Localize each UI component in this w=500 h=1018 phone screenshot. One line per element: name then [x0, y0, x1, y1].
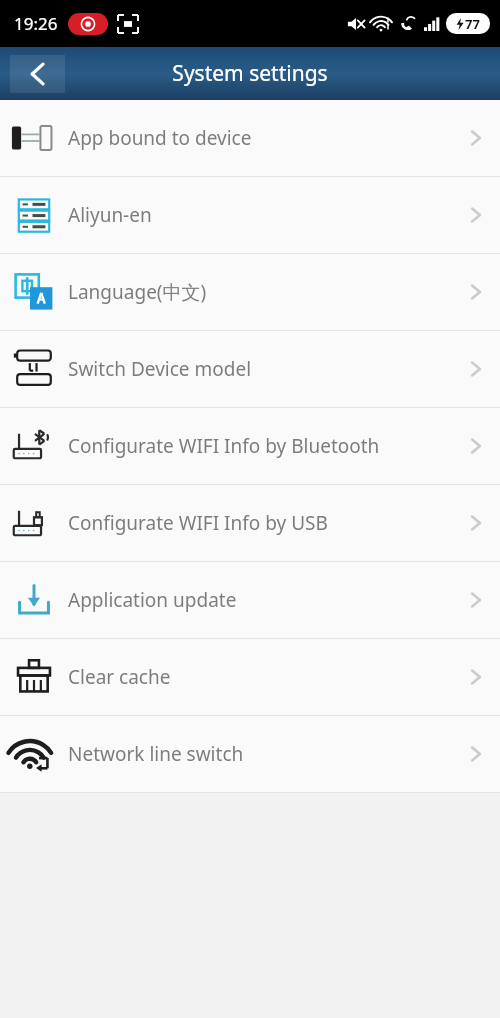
staticText: 77: [465, 15, 480, 33]
button[interactable]: Configurate WIFI Info by USB: [0, 485, 500, 561]
button[interactable]: Back: [10, 55, 65, 93]
button[interactable]: Configurate WIFI Info by Bluetooth: [0, 408, 500, 484]
button[interactable]: Application update: [0, 562, 500, 638]
staticText: Switch Device model: [68, 356, 470, 382]
button[interactable]: Aliyun-en: [0, 177, 500, 253]
staticText: 19:26: [14, 12, 58, 35]
staticText: System settings: [172, 59, 328, 88]
staticText: Aliyun-en: [68, 202, 470, 228]
staticText: Configurate WIFI Info by Bluetooth: [68, 433, 470, 459]
button[interactable]: Clear cache: [0, 639, 500, 715]
staticText: Language(中文): [68, 279, 470, 305]
staticText: App bound to device: [68, 125, 470, 151]
staticText: Configurate WIFI Info by USB: [68, 510, 470, 536]
button[interactable]: Switch Device model: [0, 331, 500, 407]
staticText: Clear cache: [68, 664, 470, 690]
staticText: Application update: [68, 587, 470, 613]
staticText: Network line switch: [68, 741, 470, 767]
button[interactable]: Network line switch: [0, 716, 500, 792]
button[interactable]: Language(中文): [0, 254, 500, 330]
button[interactable]: App bound to device: [0, 100, 500, 176]
